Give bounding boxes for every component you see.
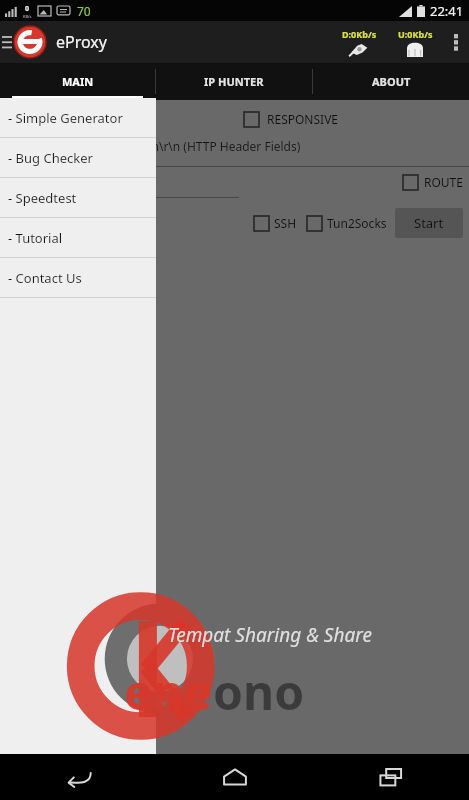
button[interactable]: Start: [395, 208, 463, 238]
button[interactable]: Open navigation drawer: [0, 21, 14, 63]
staticText: RESPONSIVE: [267, 111, 339, 127]
staticText: SSH: [274, 215, 297, 231]
button[interactable]: Back: [0, 754, 157, 800]
staticText: - Simple Generator: [8, 109, 123, 127]
staticText: ene: [124, 659, 213, 724]
button[interactable]: - Contact Us: [0, 258, 156, 297]
staticText: - Tutorial: [8, 229, 63, 247]
button[interactable]: - Tutorial: [0, 218, 156, 257]
button[interactable]: Upload speed: [387, 21, 443, 63]
staticText: ROUTE: [424, 174, 463, 190]
button[interactable]: - Simple Generator: [0, 98, 156, 137]
staticText: 22:41: [430, 2, 464, 20]
staticText: 4th4nk: [10, 250, 53, 268]
staticText: D:0Kb/s: [342, 28, 377, 40]
staticText: Start: [414, 214, 444, 232]
button[interactable]: IP HUNTER: [156, 63, 312, 100]
staticText: 70: [77, 3, 91, 19]
staticText: ABOUT: [372, 74, 411, 89]
button[interactable]: - Speedtest: [0, 178, 156, 217]
button[interactable]: More options: [443, 21, 469, 63]
staticText: Connection: keep-alive\r\n\r\n (HTTP Hea…: [10, 138, 301, 154]
button[interactable]: Download speed: [331, 21, 387, 63]
staticText: Tempat Sharing & Share: [168, 622, 372, 648]
staticText: IP HUNTER: [204, 74, 264, 89]
staticText: 0: [25, 4, 30, 14]
staticText: Tun2Socks: [327, 215, 387, 231]
staticText: MAIN: [62, 74, 94, 89]
staticText: ono: [213, 659, 305, 724]
staticText: - Contact Us: [8, 269, 82, 287]
button[interactable]: ABOUT: [313, 63, 469, 100]
staticText: U:0Kb/s: [398, 28, 433, 40]
button[interactable]: - Bug Checker: [0, 138, 156, 177]
staticText: - Speedtest: [8, 189, 77, 207]
button[interactable]: Home: [157, 754, 313, 800]
button[interactable]: Recent apps: [313, 754, 469, 800]
button[interactable]: MAIN: [0, 63, 155, 100]
staticText: - Bug Checker: [8, 149, 93, 167]
staticText: KB/s: [23, 14, 32, 19]
staticText: eProxy: [56, 31, 107, 53]
